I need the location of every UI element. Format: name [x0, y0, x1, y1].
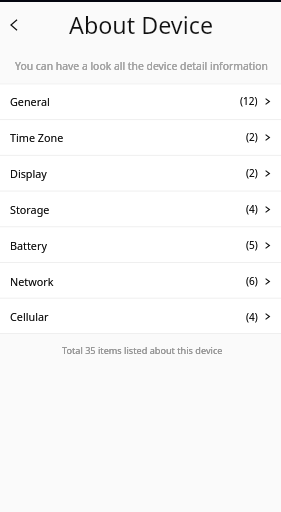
staticText: General: [10, 94, 50, 109]
staticText: Time Zone: [10, 130, 64, 145]
staticText: General: [10, 94, 50, 109]
staticText: Cellular: [10, 309, 49, 324]
button[interactable]: Time Zone: [0, 119, 281, 155]
staticText: Display: [10, 166, 47, 181]
staticText: Total 35 items listed about this device: [62, 344, 223, 356]
staticText: Network: [10, 274, 54, 289]
staticText: Battery: [10, 238, 47, 253]
staticText: (4): [246, 310, 258, 324]
staticText: Storage: [10, 202, 50, 217]
button[interactable]: General: [0, 83, 281, 119]
staticText: (2): [246, 130, 258, 144]
staticText: (4): [246, 310, 258, 324]
staticText: (12): [240, 94, 258, 108]
button[interactable]: Back: [0, 11, 28, 39]
staticText: (5): [246, 238, 258, 252]
staticText: You can have a look all the device detai…: [15, 59, 268, 73]
button[interactable]: Display: [0, 155, 281, 191]
staticText: Cellular: [10, 309, 49, 324]
staticText: Total 35 items listed about this device: [62, 344, 223, 356]
staticText: (6): [246, 274, 258, 288]
staticText: (6): [246, 274, 258, 288]
button[interactable]: Network: [0, 263, 281, 299]
staticText: (2): [246, 166, 258, 180]
staticText: (5): [246, 238, 258, 252]
staticText: Network: [10, 274, 54, 289]
staticText: (12): [240, 94, 258, 108]
staticText: Display: [10, 166, 47, 181]
staticText: (2): [246, 166, 258, 180]
staticText: (4): [246, 202, 258, 216]
staticText: Battery: [10, 238, 47, 253]
staticText: (2): [246, 130, 258, 144]
staticText: (4): [246, 202, 258, 216]
staticText: Storage: [10, 202, 50, 217]
button[interactable]: Storage: [0, 191, 281, 227]
staticText: Time Zone: [10, 130, 64, 145]
staticText: You can have a look all the device detai…: [15, 59, 268, 73]
staticText: About Device: [69, 9, 214, 41]
button[interactable]: Battery: [0, 227, 281, 263]
button[interactable]: Cellular: [0, 299, 281, 334]
